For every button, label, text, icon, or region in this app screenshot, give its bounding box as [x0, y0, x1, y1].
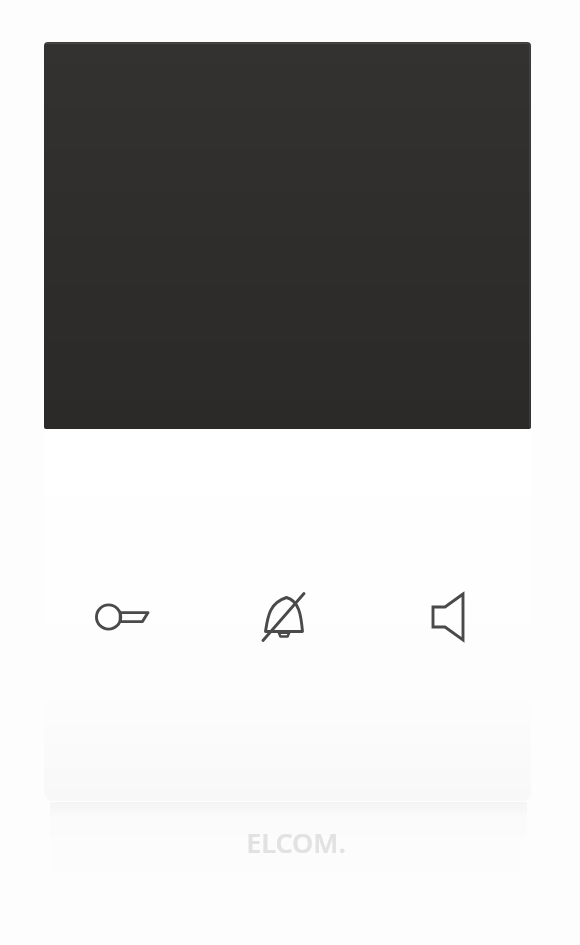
button[interactable]: Speaker volume	[399, 570, 499, 664]
button[interactable]: Open door	[72, 570, 172, 664]
button[interactable]: ELCOM.	[50, 802, 527, 890]
button[interactable]: Display	[44, 42, 531, 429]
button[interactable]: Mute ringtone	[234, 570, 334, 664]
staticText: ELCOM.	[246, 824, 346, 861]
